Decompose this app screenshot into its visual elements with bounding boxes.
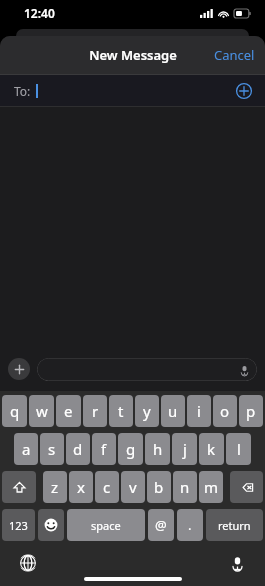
staticText: w [36, 401, 48, 421]
staticText: r [92, 401, 99, 421]
button[interactable]: q [2, 395, 27, 427]
button[interactable]: g [118, 433, 143, 465]
button[interactable]: s [40, 433, 64, 465]
button[interactable]: y [135, 395, 159, 427]
staticText: n [180, 477, 190, 497]
staticText: a [22, 439, 31, 459]
staticText: s [48, 439, 56, 459]
staticText: o [220, 401, 230, 421]
staticText: return [218, 518, 251, 533]
button[interactable]: Change keyboard [18, 553, 38, 573]
button[interactable]: @ [148, 509, 174, 541]
button[interactable]: r [83, 395, 107, 427]
staticText: h [153, 439, 163, 459]
staticText: x [77, 477, 85, 497]
button[interactable]: . [177, 509, 203, 541]
staticText: To: [14, 83, 31, 99]
button[interactable]: Voice input [37, 358, 257, 381]
button[interactable]: 123 [2, 509, 35, 541]
staticText: m [204, 477, 219, 497]
button[interactable]: n [173, 471, 197, 503]
button[interactable]: d [66, 433, 90, 465]
button[interactable]: Cancel [204, 38, 265, 72]
button[interactable]: o [213, 395, 237, 427]
button[interactable]: k [199, 433, 224, 465]
button[interactable]: f [92, 433, 116, 465]
staticText: k [207, 439, 216, 459]
staticText: d [73, 439, 83, 459]
button[interactable]: l [226, 433, 251, 465]
button[interactable]: e [56, 395, 81, 427]
button[interactable]: i [187, 395, 211, 427]
staticText: Cancel [214, 46, 255, 64]
staticText: @ [155, 516, 167, 534]
button[interactable]: j [172, 433, 197, 465]
staticText: v [129, 477, 137, 497]
staticText: f [101, 439, 107, 459]
button[interactable]: return [206, 509, 263, 541]
button[interactable]: w [29, 395, 54, 427]
staticText: y [143, 401, 151, 421]
button[interactable]: v [121, 471, 145, 503]
staticText: e [64, 401, 73, 421]
button[interactable]: b [147, 471, 171, 503]
button[interactable]: Backspace [230, 471, 263, 503]
staticText: i [197, 401, 201, 421]
other: Voice input [237, 363, 251, 377]
staticText: space [91, 518, 121, 533]
button[interactable]: Dictation [227, 553, 247, 573]
button[interactable]: Add contact [233, 80, 255, 102]
button[interactable]: a [14, 433, 38, 465]
staticText: 12:40 [24, 5, 55, 21]
button[interactable]: z [43, 471, 67, 503]
button[interactable]: h [145, 433, 170, 465]
button[interactable]: m [199, 471, 223, 503]
staticText: . [188, 516, 192, 534]
staticText: New Message [89, 46, 177, 64]
button[interactable]: c [95, 471, 119, 503]
staticText: c [103, 477, 111, 497]
button[interactable]: x [69, 471, 93, 503]
staticText: l [237, 439, 241, 459]
button[interactable]: u [161, 395, 185, 427]
button[interactable]: space [67, 509, 145, 541]
staticText: p [246, 401, 256, 421]
staticText: q [10, 401, 20, 421]
staticText: t [118, 401, 124, 421]
staticText: 123 [9, 518, 28, 533]
button[interactable]: Add attachment [8, 358, 30, 380]
button[interactable]: t [109, 395, 133, 427]
button[interactable]: Emoji [38, 509, 64, 541]
button[interactable]: Shift [2, 471, 36, 503]
staticText: b [154, 477, 164, 497]
staticText: j [183, 439, 187, 459]
button[interactable]: p [239, 395, 263, 427]
staticText: g [126, 439, 136, 459]
staticText: z [51, 477, 59, 497]
staticText: u [168, 401, 178, 421]
